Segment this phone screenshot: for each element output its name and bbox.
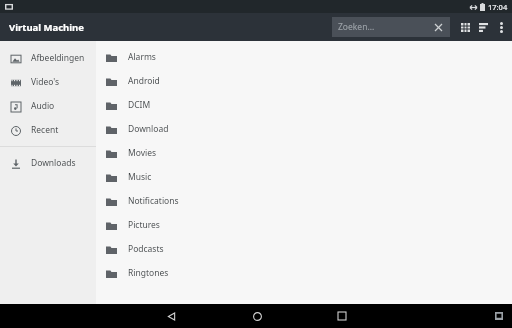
button[interactable]: Back — [159, 304, 183, 328]
staticText: Podcasts — [128, 243, 164, 255]
staticText: Download — [128, 123, 169, 135]
staticText: Pictures — [128, 219, 160, 231]
button[interactable]: Clear search — [432, 21, 444, 33]
button[interactable]: Alarms — [96, 45, 512, 69]
staticText: Ringtones — [128, 267, 169, 279]
button[interactable]: Downloads — [0, 151, 96, 175]
staticText: Movies — [128, 147, 157, 159]
staticText: Zoeken... — [338, 21, 432, 33]
button[interactable]: Notifications — [96, 189, 512, 213]
button[interactable]: More options — [492, 18, 510, 36]
staticText: Notifications — [128, 195, 179, 207]
staticText: Afbeeldingen — [31, 52, 85, 64]
button[interactable]: Movies — [96, 141, 512, 165]
staticText: Music — [128, 171, 152, 183]
staticText: Downloads — [31, 157, 76, 169]
button[interactable]: Audio — [0, 94, 96, 118]
button[interactable]: Android — [96, 69, 512, 93]
button[interactable]: Home — [245, 304, 269, 328]
staticText: Virtual Machine — [9, 21, 84, 34]
button[interactable]: Podcasts — [96, 237, 512, 261]
button[interactable]: Sort — [474, 18, 492, 36]
staticText: Recent — [31, 124, 59, 136]
staticText: Android — [128, 75, 160, 87]
button[interactable]: Ringtones — [96, 261, 512, 285]
button[interactable]: Music — [96, 165, 512, 189]
button[interactable]: Screenshot — [492, 309, 506, 323]
button[interactable]: DCIM — [96, 93, 512, 117]
button[interactable]: Grid view — [456, 18, 474, 36]
button[interactable]: Afbeeldingen — [0, 46, 96, 70]
button[interactable]: Video's — [0, 70, 96, 94]
staticText: Alarms — [128, 51, 156, 63]
button[interactable]: Zoeken... — [332, 17, 450, 37]
button[interactable]: Recent — [0, 118, 96, 142]
button[interactable]: Pictures — [96, 213, 512, 237]
staticText: Video's — [31, 76, 60, 88]
staticText: DCIM — [128, 99, 151, 111]
button[interactable]: Recent apps — [330, 304, 354, 328]
staticText: 17:04 — [488, 2, 508, 12]
staticText: Audio — [31, 100, 55, 112]
button[interactable]: Download — [96, 117, 512, 141]
